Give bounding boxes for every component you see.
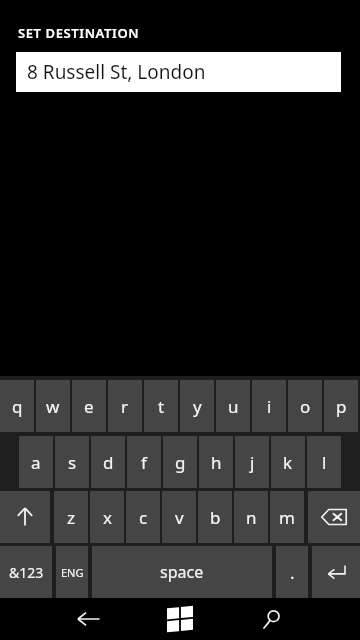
button[interactable]: k xyxy=(271,436,305,488)
button[interactable]: j xyxy=(235,436,269,488)
staticText: 8 Russell St, London xyxy=(27,59,206,85)
button[interactable]: Search xyxy=(236,598,308,640)
button[interactable]: t xyxy=(144,380,178,432)
staticText: n xyxy=(246,506,257,529)
staticText: t xyxy=(158,395,165,418)
button[interactable]: i xyxy=(252,380,286,432)
button[interactable]: n xyxy=(234,491,268,543)
button[interactable]: u xyxy=(216,380,250,432)
button[interactable]: v xyxy=(162,491,196,543)
button[interactable]: g xyxy=(163,436,197,488)
button[interactable]: Enter xyxy=(312,546,360,598)
staticText: l xyxy=(322,451,327,474)
button[interactable]: Shift xyxy=(0,491,50,543)
button[interactable]: space xyxy=(92,546,272,598)
staticText: x xyxy=(103,506,112,529)
staticText: g xyxy=(175,451,186,474)
button[interactable]: w xyxy=(36,380,70,432)
button[interactable]: l xyxy=(307,436,341,488)
button[interactable]: . xyxy=(276,546,308,598)
button[interactable]: h xyxy=(199,436,233,488)
staticText: space xyxy=(160,561,204,583)
staticText: y xyxy=(193,395,202,418)
staticText: c xyxy=(139,506,148,529)
button[interactable]: b xyxy=(198,491,232,543)
staticText: w xyxy=(46,395,60,418)
button[interactable]: Start xyxy=(144,598,216,640)
staticText: s xyxy=(68,451,77,474)
staticText: a xyxy=(31,451,41,474)
button[interactable]: &123 xyxy=(0,546,52,598)
staticText: b xyxy=(210,506,221,529)
staticText: j xyxy=(250,451,255,474)
staticText: q xyxy=(12,395,23,418)
staticText: m xyxy=(279,506,295,529)
button[interactable]: o xyxy=(288,380,322,432)
staticText: u xyxy=(228,395,239,418)
button[interactable]: p xyxy=(324,380,358,432)
button[interactable]: Back xyxy=(52,598,124,640)
button[interactable]: c xyxy=(126,491,160,543)
staticText: &123 xyxy=(9,563,44,582)
button[interactable]: e xyxy=(72,380,106,432)
button[interactable]: y xyxy=(180,380,214,432)
staticText: f xyxy=(141,451,147,474)
staticText: . xyxy=(290,561,295,584)
button[interactable]: r xyxy=(108,380,142,432)
staticText: h xyxy=(211,451,222,474)
staticText: p xyxy=(336,395,347,418)
staticText: ENG xyxy=(61,565,84,580)
staticText: r xyxy=(121,395,129,418)
staticText: k xyxy=(283,451,293,474)
button[interactable]: Backspace xyxy=(308,491,360,543)
staticText: SET DESTINATION xyxy=(18,24,140,42)
button[interactable]: d xyxy=(91,436,125,488)
button[interactable]: z xyxy=(54,491,88,543)
button[interactable]: ENG xyxy=(56,546,88,598)
button[interactable]: 8 Russell St, London xyxy=(16,52,341,92)
staticText: e xyxy=(84,395,94,418)
button[interactable]: s xyxy=(55,436,89,488)
button[interactable]: f xyxy=(127,436,161,488)
staticText: z xyxy=(67,506,75,529)
button[interactable]: m xyxy=(270,491,304,543)
staticText: d xyxy=(103,451,114,474)
button[interactable]: q xyxy=(0,380,34,432)
button[interactable]: a xyxy=(19,436,53,488)
staticText: i xyxy=(267,395,272,418)
staticText: v xyxy=(175,506,184,529)
button[interactable]: x xyxy=(90,491,124,543)
staticText: o xyxy=(300,395,311,418)
